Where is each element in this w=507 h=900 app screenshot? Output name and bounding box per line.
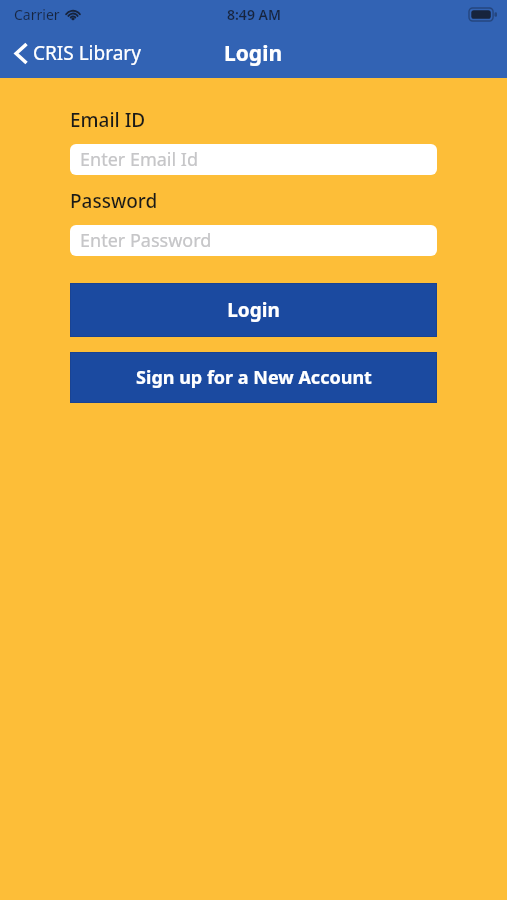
button[interactable]: Sign up for a New Account [71, 353, 436, 402]
staticText: Carrier [14, 5, 60, 24]
staticText: CRIS Library [33, 40, 141, 66]
button[interactable]: Enter Password [70, 225, 437, 256]
staticText: Login [224, 39, 283, 68]
staticText: 8:49 AM [227, 5, 281, 24]
staticText: Email ID [70, 107, 146, 133]
staticText: Sign up for a New Account [136, 365, 372, 390]
button[interactable]: CRIS Library [0, 34, 151, 72]
staticText: Password [70, 188, 158, 214]
staticText: Enter Password [80, 228, 212, 253]
button[interactable]: Enter Email Id [70, 144, 437, 175]
staticText: Login [227, 297, 280, 323]
button[interactable]: Login [71, 284, 436, 336]
staticText: Enter Email Id [80, 147, 198, 172]
